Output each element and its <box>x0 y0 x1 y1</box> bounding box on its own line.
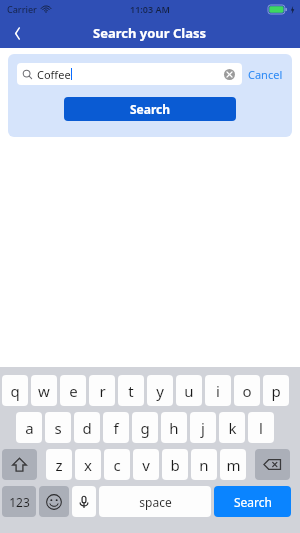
staticText: g <box>140 418 150 438</box>
staticText: j <box>201 418 205 438</box>
button[interactable]: g <box>132 412 158 443</box>
staticText: Carrier <box>7 3 37 15</box>
staticText: h <box>169 418 179 438</box>
button[interactable]: j <box>190 412 216 443</box>
button[interactable]: w <box>31 375 57 406</box>
staticText: t <box>128 381 134 401</box>
staticText: n <box>199 455 209 475</box>
button[interactable]: Search <box>214 486 291 517</box>
staticText: v <box>142 455 150 475</box>
staticText: Search <box>130 101 171 117</box>
staticText: 123 <box>9 494 30 510</box>
button[interactable]: z <box>46 449 72 480</box>
button[interactable]: n <box>191 449 217 480</box>
staticText: d <box>82 418 92 438</box>
button[interactable]: Shift <box>2 449 37 480</box>
button[interactable]: h <box>161 412 187 443</box>
button[interactable]: f <box>103 412 129 443</box>
button[interactable]: k <box>219 412 245 443</box>
button[interactable]: Cancel <box>248 67 283 82</box>
button[interactable]: o <box>234 375 260 406</box>
staticText: 11:03 AM <box>130 3 170 15</box>
button[interactable]: q <box>2 375 28 406</box>
button[interactable]: m <box>220 449 246 480</box>
staticText: o <box>242 381 252 401</box>
button[interactable]: e <box>60 375 86 406</box>
staticText: m <box>226 455 241 475</box>
button[interactable]: b <box>162 449 188 480</box>
staticText: u <box>184 381 194 401</box>
staticText: l <box>259 418 263 438</box>
button[interactable]: y <box>147 375 173 406</box>
button[interactable]: 123 <box>2 486 36 517</box>
staticText: Cancel <box>248 67 283 82</box>
staticText: b <box>170 455 180 475</box>
staticText: e <box>69 381 78 401</box>
button[interactable]: Emoji <box>39 486 69 517</box>
button[interactable]: Dictate <box>72 486 96 517</box>
button[interactable]: r <box>89 375 115 406</box>
staticText: a <box>25 418 34 438</box>
button[interactable]: s <box>45 412 71 443</box>
button[interactable]: l <box>248 412 274 443</box>
button[interactable]: Coffee <box>17 63 242 85</box>
staticText: c <box>113 455 121 475</box>
button[interactable]: space <box>99 486 211 517</box>
button[interactable]: v <box>133 449 159 480</box>
button[interactable]: d <box>74 412 100 443</box>
button[interactable]: p <box>263 375 289 406</box>
staticText: k <box>228 418 237 438</box>
staticText: Search your Class <box>93 24 207 42</box>
staticText: Coffee <box>37 67 71 82</box>
staticText: s <box>54 418 62 438</box>
button[interactable]: Search <box>64 97 236 121</box>
button[interactable]: c <box>104 449 130 480</box>
button[interactable]: t <box>118 375 144 406</box>
staticText: Search <box>234 494 272 510</box>
button[interactable]: u <box>176 375 202 406</box>
button[interactable]: i <box>205 375 231 406</box>
button[interactable]: Backspace <box>255 449 290 480</box>
staticText: x <box>84 455 92 475</box>
staticText: space <box>139 494 172 510</box>
button[interactable]: x <box>75 449 101 480</box>
button[interactable]: Clear text <box>221 66 237 82</box>
staticText: z <box>55 455 63 475</box>
staticText: w <box>38 381 50 401</box>
staticText: f <box>113 418 119 438</box>
button[interactable]: a <box>16 412 42 443</box>
staticText: r <box>99 381 106 401</box>
button[interactable]: Back <box>0 18 34 48</box>
staticText: p <box>271 381 281 401</box>
staticText: y <box>156 381 164 401</box>
staticText: q <box>10 381 20 401</box>
staticText: i <box>216 381 220 401</box>
